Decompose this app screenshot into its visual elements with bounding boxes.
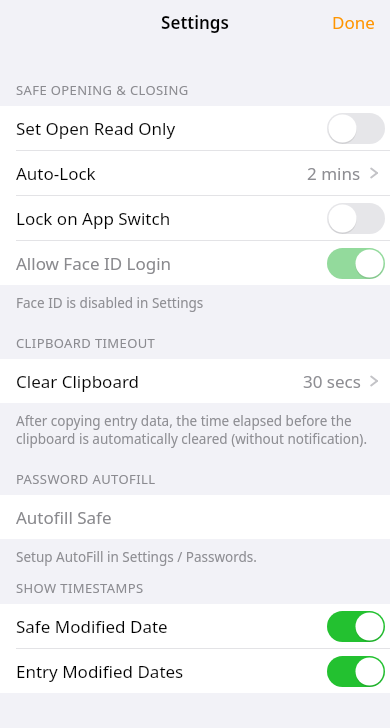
staticText: Allow Face ID Login xyxy=(16,252,327,275)
button[interactable]: Set Open Read Only xyxy=(327,113,385,144)
staticText: Done xyxy=(332,11,375,34)
staticText: SAFE OPENING & CLOSING xyxy=(16,81,189,99)
staticText: Autofill Safe xyxy=(16,506,378,529)
staticText: Face ID is disabled in Settings xyxy=(16,294,204,312)
staticText: Safe Modified Date xyxy=(16,615,327,638)
staticText: 30 secs xyxy=(303,370,361,393)
button[interactable]: Safe Modified Date xyxy=(327,611,385,642)
button[interactable]: Entry Modified Dates xyxy=(0,649,390,693)
staticText: Lock on App Switch xyxy=(16,207,327,230)
staticText: 2 mins xyxy=(307,162,361,185)
button[interactable]: Allow Face ID Login xyxy=(327,248,385,279)
button[interactable]: Lock on App Switch xyxy=(327,203,385,234)
button[interactable]: Lock on App Switch xyxy=(0,196,390,240)
staticText: Setup AutoFill in Settings / Passwords. xyxy=(16,548,257,566)
button[interactable]: Autofill Safe xyxy=(0,495,390,539)
staticText: CLIPBOARD TIMEOUT xyxy=(16,334,156,352)
button[interactable]: Entry Modified Dates xyxy=(327,656,385,687)
button[interactable]: Allow Face ID Login xyxy=(0,241,390,285)
staticText: Auto-Lock xyxy=(16,162,307,185)
staticText: PASSWORD AUTOFILL xyxy=(16,470,156,488)
staticText: Settings xyxy=(161,11,229,34)
button[interactable]: Clear Clipboard xyxy=(0,359,390,403)
staticText: After copying entry data, the time elaps… xyxy=(16,412,370,448)
staticText: SHOW TIMESTAMPS xyxy=(16,579,144,597)
button[interactable]: Set Open Read Only xyxy=(0,106,390,150)
button[interactable]: Auto-Lock xyxy=(0,151,390,195)
button[interactable]: Safe Modified Date xyxy=(0,604,390,648)
staticText: Clear Clipboard xyxy=(16,370,303,393)
staticText: Entry Modified Dates xyxy=(16,660,327,683)
staticText: Set Open Read Only xyxy=(16,117,327,140)
button[interactable]: Done xyxy=(317,7,390,38)
